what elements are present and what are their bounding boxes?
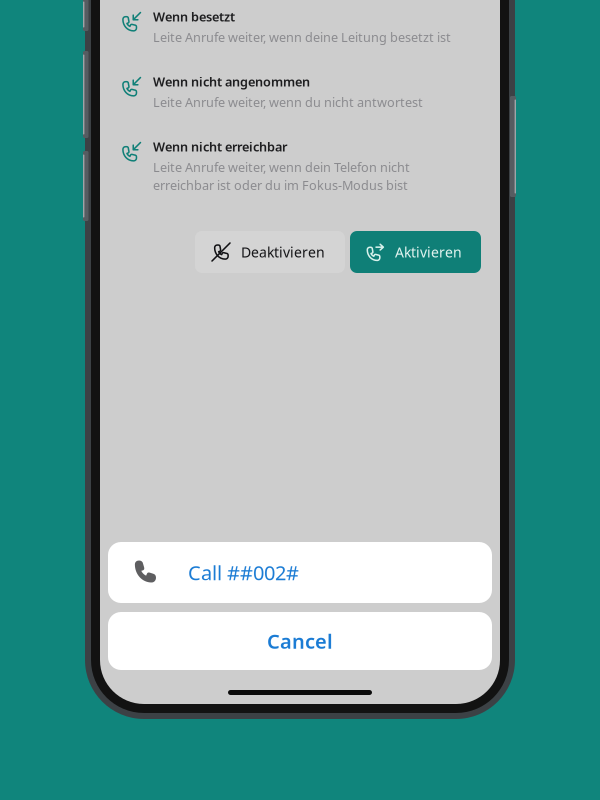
staticText: Cancel: [267, 627, 333, 655]
staticText: Wenn besetzt: [153, 8, 235, 25]
staticText: Wenn nicht erreichbar: [153, 138, 287, 155]
button[interactable]: Deaktivieren: [195, 231, 345, 273]
button[interactable]: Call ##002#: [108, 542, 492, 603]
button[interactable]: Aktivieren: [350, 231, 481, 273]
staticText: Wenn nicht angenommen: [153, 73, 310, 90]
staticText: Leite Anrufe weiter, wenn deine Leitung …: [153, 28, 451, 46]
staticText: erreichbar ist oder du im Fokus-Modus bi…: [153, 176, 408, 194]
staticText: Leite Anrufe weiter, wenn du nicht antwo…: [153, 93, 423, 111]
staticText: Call ##002#: [188, 559, 299, 586]
staticText: Aktivieren: [395, 242, 462, 262]
staticText: Leite Anrufe weiter, wenn dein Telefon n…: [153, 158, 410, 176]
button[interactable]: Cancel: [108, 612, 492, 670]
staticText: Deaktivieren: [241, 242, 325, 262]
